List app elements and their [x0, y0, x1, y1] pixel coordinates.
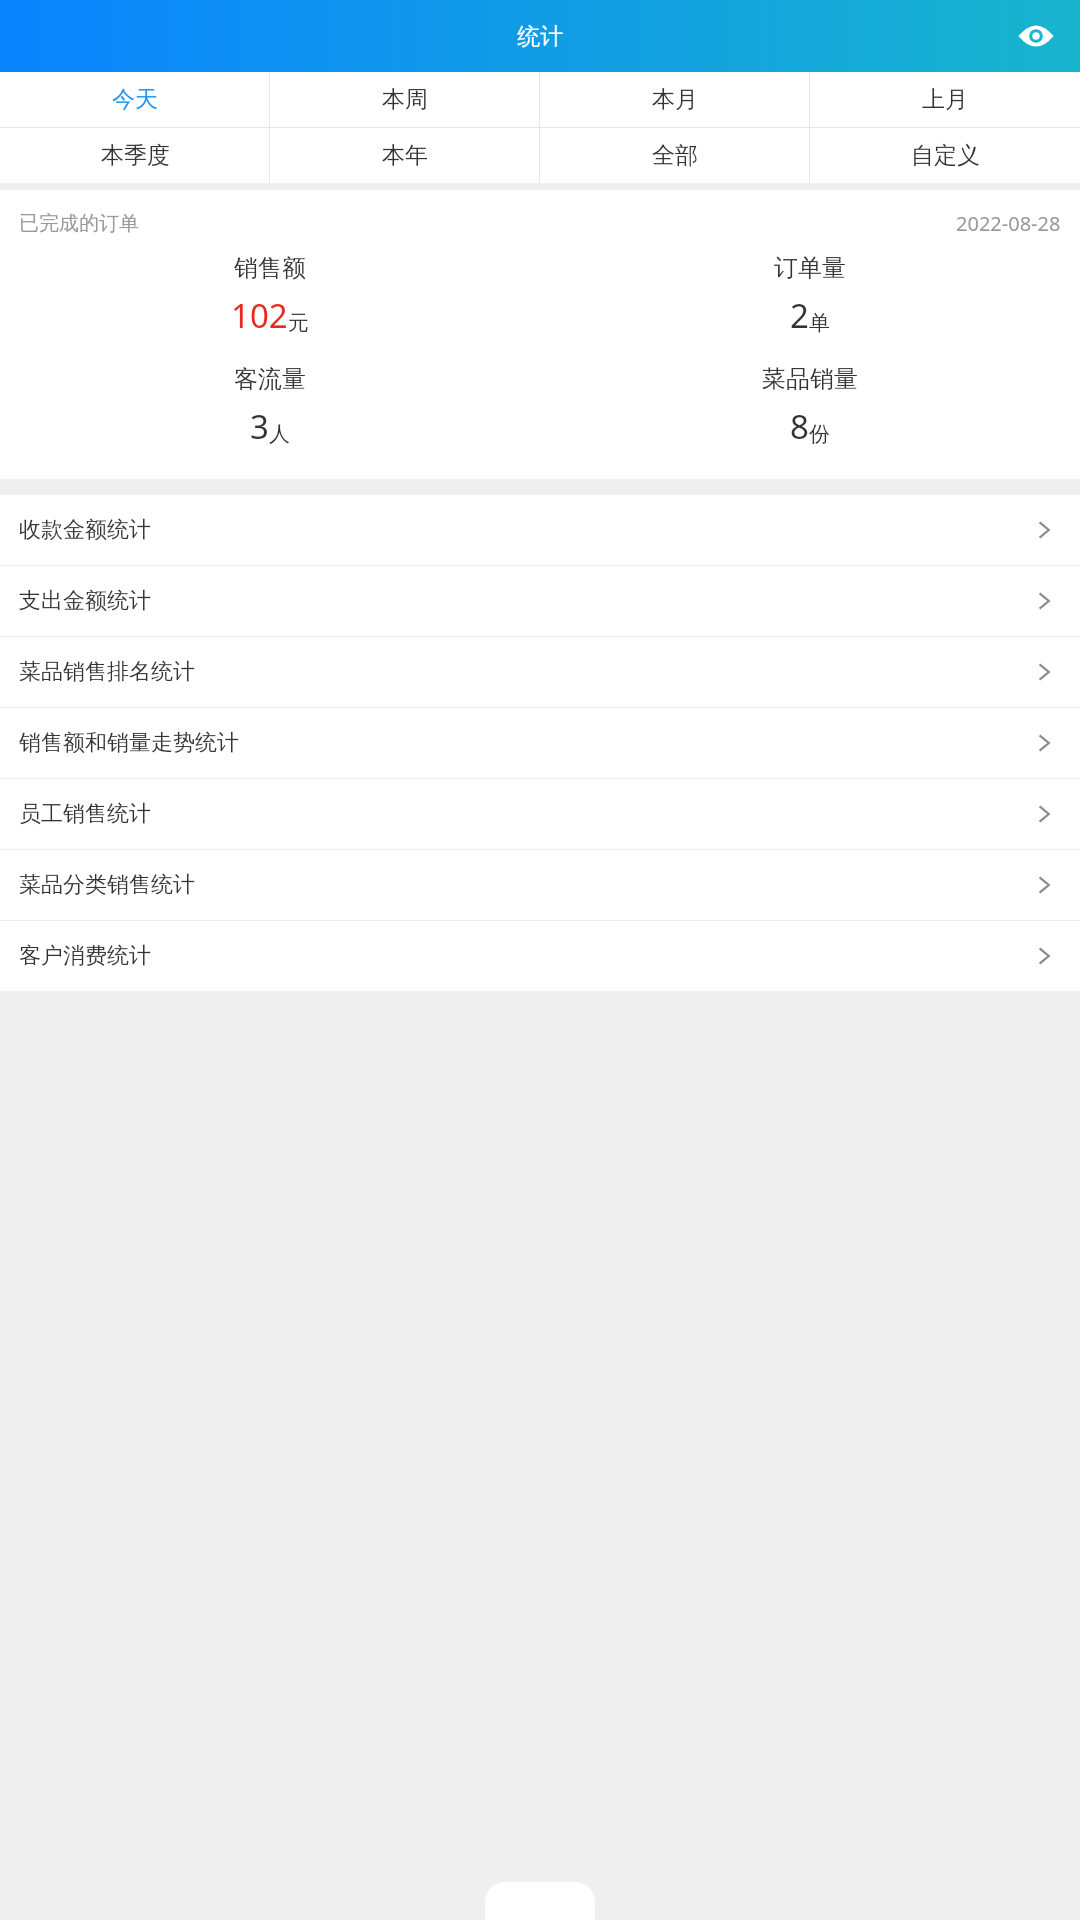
staticText: 2022-08-28 — [956, 210, 1061, 237]
staticText: 102 — [231, 293, 288, 338]
staticText: 8 — [790, 404, 809, 449]
staticText: 员工销售统计 — [19, 800, 151, 828]
button[interactable]: 本季度 — [0, 128, 270, 183]
staticText: 已完成的订单 — [19, 211, 139, 236]
staticText: 今天 — [112, 85, 158, 114]
button[interactable]: 收款金额统计 — [0, 495, 1080, 565]
button[interactable]: 菜品分类销售统计 — [0, 850, 1080, 920]
staticText: 全部 — [652, 141, 698, 170]
staticText: 人 — [269, 421, 290, 447]
staticText: 统计 — [517, 22, 563, 51]
staticText: 本周 — [382, 85, 428, 114]
button[interactable]: 自定义 — [810, 128, 1080, 183]
button[interactable]: 客户消费统计 — [0, 921, 1080, 991]
button[interactable]: 上月 — [810, 72, 1080, 127]
staticText: 本月 — [652, 85, 698, 114]
button[interactable]: Toggle visibility — [1010, 10, 1062, 62]
staticText: 销售额和销量走势统计 — [19, 729, 239, 757]
staticText: 3 — [250, 404, 269, 449]
button[interactable]: 本年 — [270, 128, 540, 183]
button[interactable]: 销售额 — [0, 253, 540, 338]
button[interactable]: 支出金额统计 — [0, 566, 1080, 636]
button[interactable]: 菜品销量 — [540, 364, 1080, 449]
staticText: 单 — [809, 310, 830, 336]
staticText: 销售额 — [234, 253, 306, 283]
button[interactable]: Home — [485, 1882, 595, 1920]
staticText: 客流量 — [234, 364, 306, 394]
staticText: 上月 — [922, 85, 968, 114]
staticText: 份 — [809, 421, 830, 447]
button[interactable]: 本周 — [270, 72, 540, 127]
staticText: 收款金额统计 — [19, 516, 151, 544]
button[interactable]: 订单量 — [540, 253, 1080, 338]
button[interactable]: 销售额和销量走势统计 — [0, 708, 1080, 778]
staticText: 本年 — [382, 141, 428, 170]
button[interactable]: 客流量 — [0, 364, 540, 449]
staticText: 菜品分类销售统计 — [19, 871, 195, 899]
button[interactable]: 本月 — [540, 72, 810, 127]
staticText: 菜品销量 — [762, 364, 858, 394]
button[interactable]: 员工销售统计 — [0, 779, 1080, 849]
staticText: 元 — [288, 310, 309, 336]
staticText: 自定义 — [911, 141, 980, 170]
button[interactable]: 今天 — [0, 72, 270, 127]
staticText: 订单量 — [774, 253, 846, 283]
button[interactable]: 全部 — [540, 128, 810, 183]
staticText: 客户消费统计 — [19, 942, 151, 970]
button[interactable]: 菜品销售排名统计 — [0, 637, 1080, 707]
staticText: 本季度 — [101, 141, 170, 170]
staticText: 菜品销售排名统计 — [19, 658, 195, 686]
staticText: 2 — [790, 293, 809, 338]
staticText: 支出金额统计 — [19, 587, 151, 615]
